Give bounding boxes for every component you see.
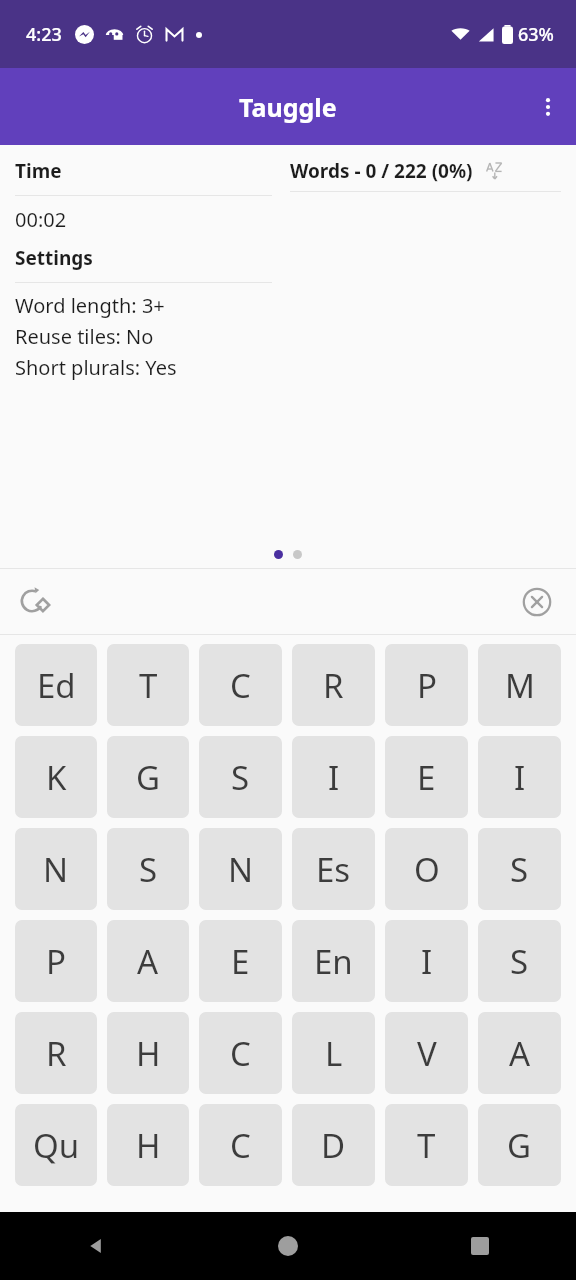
button[interactable]: N [15, 828, 97, 910]
staticText: C [230, 1123, 251, 1168]
staticText: I [328, 755, 340, 800]
button[interactable]: E [199, 920, 282, 1002]
staticText: I [421, 939, 433, 984]
button[interactable]: D [292, 1104, 375, 1186]
staticText: R [323, 663, 344, 708]
button[interactable]: G [107, 736, 189, 818]
staticText: T [417, 1123, 436, 1168]
staticText: S [510, 847, 529, 892]
button[interactable]: I [292, 736, 375, 818]
button[interactable]: E [385, 736, 468, 818]
button[interactable]: R [15, 1012, 97, 1094]
staticText: S [139, 847, 158, 892]
staticText: S [231, 755, 250, 800]
button[interactable]: S [478, 920, 561, 1002]
staticText: Time [15, 158, 62, 184]
button[interactable]: Qu [15, 1104, 97, 1186]
staticText: G [507, 1123, 532, 1168]
staticText: A [137, 939, 159, 984]
staticText: C [230, 663, 251, 708]
staticText: O [414, 847, 440, 892]
staticText: H [136, 1123, 161, 1168]
button[interactable]: Recent apps [384, 1212, 576, 1280]
button[interactable]: K [15, 736, 97, 818]
staticText: Reuse tiles: No [15, 323, 154, 350]
staticText: T [139, 663, 158, 708]
button[interactable]: Sort alphabetically [483, 158, 509, 184]
staticText: I [514, 755, 526, 800]
button[interactable]: A [478, 1012, 561, 1094]
staticText: C [230, 1031, 251, 1076]
button[interactable]: Ed [15, 644, 97, 726]
staticText: R [46, 1031, 67, 1076]
button[interactable]: Clear [510, 575, 564, 629]
staticText: 63% [518, 22, 554, 47]
staticText: P [46, 939, 66, 984]
staticText: Word length: 3+ [15, 292, 165, 319]
button[interactable]: C [199, 1104, 282, 1186]
button[interactable]: Shuffle tiles [8, 575, 62, 629]
button[interactable]: V [385, 1012, 468, 1094]
button[interactable]: G [478, 1104, 561, 1186]
button[interactable]: C [199, 1012, 282, 1094]
button[interactable]: P [15, 920, 97, 1002]
button[interactable]: I [478, 736, 561, 818]
staticText: E [231, 939, 250, 984]
staticText: N [228, 847, 254, 892]
staticText: N [43, 847, 69, 892]
staticText: Words - 0 / 222 (0%) [290, 158, 473, 184]
button[interactable]: S [107, 828, 189, 910]
button[interactable]: H [107, 1104, 189, 1186]
button[interactable]: More options [520, 79, 576, 135]
button[interactable]: A [107, 920, 189, 1002]
staticText: Tauggle [239, 90, 337, 124]
staticText: Short plurals: Yes [15, 354, 177, 381]
button[interactable]: Home [192, 1212, 384, 1280]
staticText: L [325, 1031, 343, 1076]
button[interactable]: S [478, 828, 561, 910]
staticText: 4:23 [26, 22, 62, 47]
staticText: S [510, 939, 529, 984]
button[interactable]: O [385, 828, 468, 910]
button[interactable]: L [292, 1012, 375, 1094]
staticText: A [509, 1031, 531, 1076]
button[interactable]: H [107, 1012, 189, 1094]
button[interactable]: M [478, 644, 561, 726]
button[interactable]: I [385, 920, 468, 1002]
staticText: K [46, 755, 67, 800]
staticText: D [321, 1123, 346, 1168]
button[interactable]: T [385, 1104, 468, 1186]
staticText: G [136, 755, 161, 800]
staticText: Es [316, 847, 351, 892]
button[interactable]: R [292, 644, 375, 726]
button[interactable]: En [292, 920, 375, 1002]
staticText: Settings [15, 245, 93, 271]
staticText: E [417, 755, 436, 800]
staticText: 00:02 [15, 206, 67, 233]
button[interactable]: P [385, 644, 468, 726]
staticText: P [417, 663, 437, 708]
staticText: M [505, 663, 535, 708]
button[interactable]: Es [292, 828, 375, 910]
staticText: V [417, 1031, 437, 1076]
button[interactable]: T [107, 644, 189, 726]
staticText: H [136, 1031, 161, 1076]
button[interactable]: C [199, 644, 282, 726]
button[interactable]: N [199, 828, 282, 910]
staticText: En [314, 939, 353, 984]
staticText: Ed [37, 663, 76, 708]
button[interactable]: Back [0, 1212, 192, 1280]
button[interactable]: S [199, 736, 282, 818]
staticText: Qu [33, 1123, 80, 1168]
